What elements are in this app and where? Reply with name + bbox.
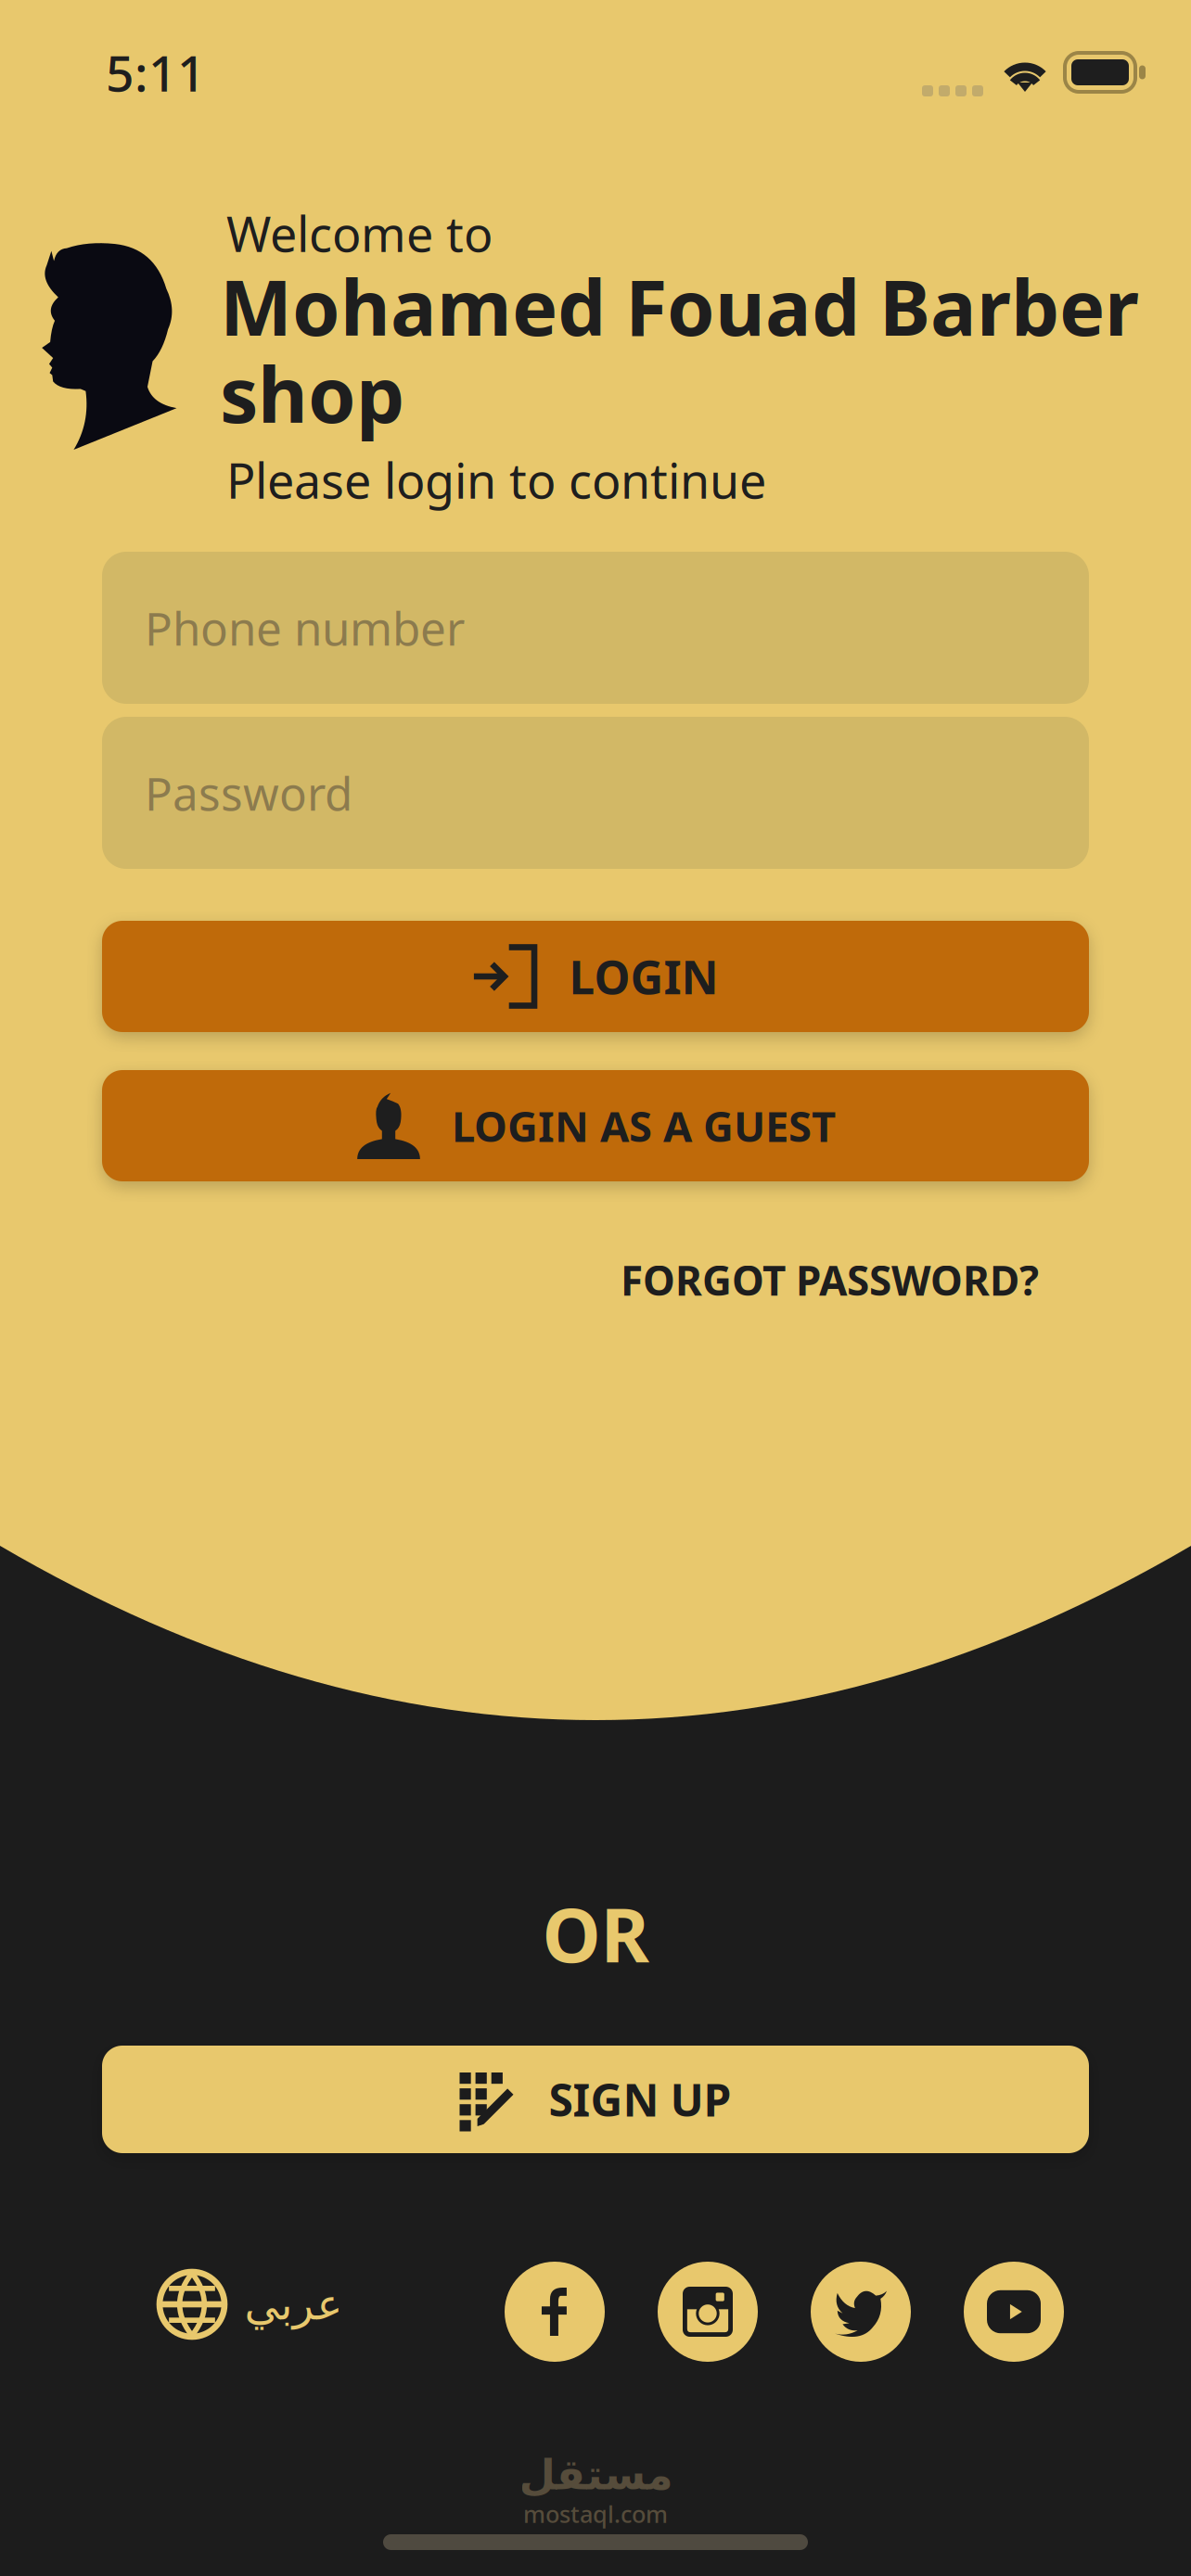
staticText: 5:11	[106, 40, 206, 105]
staticText: shop	[220, 342, 404, 444]
button[interactable]: Instagram	[658, 2262, 758, 2362]
button[interactable]: Twitter	[811, 2262, 911, 2362]
staticText: LOGIN AS A GUEST	[452, 1098, 836, 1154]
staticText: LOGIN	[569, 946, 718, 1007]
button[interactable]: Phone number	[102, 552, 1089, 704]
staticText: Phone number	[145, 597, 465, 658]
button[interactable]: Password	[102, 717, 1089, 869]
button[interactable]: Facebook	[505, 2262, 605, 2362]
staticText: OR	[542, 1884, 649, 1983]
button[interactable]: FORGOT PASSWORD?	[104, 1253, 1039, 1307]
staticText: عربي	[244, 2280, 342, 2329]
staticText: Mohamed Fouad Barber	[220, 255, 1139, 357]
button[interactable]: YouTube	[964, 2262, 1064, 2362]
button[interactable]: عربي	[160, 2272, 342, 2337]
staticText: mostaql.com	[523, 2498, 668, 2529]
staticText: Welcome to	[226, 201, 493, 265]
staticText: Password	[145, 762, 352, 823]
staticText: مستقل	[519, 2451, 672, 2499]
button[interactable]: LOGIN	[102, 921, 1089, 1032]
button[interactable]: LOGIN AS A GUEST	[102, 1070, 1089, 1181]
staticText: FORGOT PASSWORD?	[621, 1253, 1039, 1307]
staticText: SIGN UP	[549, 2070, 731, 2129]
button[interactable]: SIGN UP	[102, 2046, 1089, 2153]
staticText: Please login to continue	[226, 448, 766, 512]
